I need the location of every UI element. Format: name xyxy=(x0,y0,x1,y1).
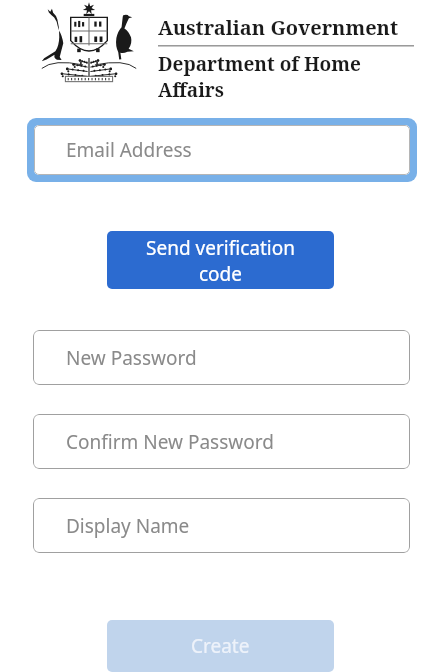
staticText: New Password xyxy=(66,345,197,371)
staticText: Create xyxy=(191,633,250,659)
staticText: Confirm New Password xyxy=(66,429,274,455)
staticText: Send verification code xyxy=(146,235,295,286)
button[interactable]: Email Address xyxy=(34,125,410,175)
other: Australian Coat of Arms xyxy=(30,2,148,90)
button[interactable]: Send verification code xyxy=(107,231,334,289)
staticText: Australian Government xyxy=(158,14,399,41)
staticText: Email Address xyxy=(66,137,192,163)
staticText: Display Name xyxy=(66,513,190,539)
staticText: Department of Home Affairs xyxy=(158,51,414,103)
button[interactable]: New Password xyxy=(33,330,410,385)
button[interactable]: Create xyxy=(107,620,334,672)
button[interactable]: Confirm New Password xyxy=(33,414,410,469)
button[interactable]: Display Name xyxy=(33,498,410,553)
